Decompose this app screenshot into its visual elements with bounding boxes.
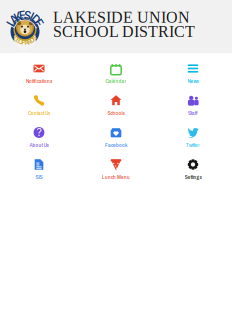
- staticText: I: [30, 10, 33, 24]
- staticText: E: [19, 9, 26, 22]
- staticText: L: [9, 16, 15, 30]
- staticText: Staff: [188, 109, 198, 117]
- button[interactable]: SIS: [0, 159, 77, 190]
- button[interactable]: Facebook: [77, 127, 154, 158]
- staticText: SCHOOL DISTRICT: [53, 23, 195, 40]
- button[interactable]: Contact Us: [0, 95, 77, 126]
- staticText: S: [32, 35, 36, 42]
- staticText: Calendar: [105, 77, 126, 85]
- button[interactable]: Twitter: [154, 127, 231, 158]
- staticText: A: [10, 13, 18, 26]
- staticText: Settings: [184, 173, 201, 181]
- staticText: E: [34, 15, 42, 31]
- button[interactable]: Calendar: [77, 63, 154, 94]
- staticText: ?: [36, 126, 41, 139]
- button[interactable]: Settings: [154, 159, 231, 190]
- button[interactable]: ?: [0, 127, 77, 158]
- staticText: D: [31, 13, 39, 26]
- staticText: E: [19, 8, 27, 24]
- staticText: L: [8, 15, 16, 31]
- staticText: LAKESIDE UNION: [53, 8, 190, 26]
- staticText: I: [30, 9, 34, 25]
- staticText: Schools: [107, 109, 124, 117]
- staticText: A: [9, 11, 19, 28]
- staticText: A: [24, 39, 28, 46]
- staticText: S: [24, 9, 31, 22]
- staticText: Twitter: [186, 141, 200, 149]
- staticText: K: [14, 9, 23, 25]
- staticText: Notifications: [26, 77, 52, 85]
- staticText: News: [187, 77, 198, 85]
- button[interactable]: News: [154, 63, 231, 94]
- staticText: About Us: [29, 141, 48, 149]
- staticText: O: [18, 38, 23, 45]
- button[interactable]: Lunch Menu: [77, 159, 154, 190]
- staticText: R: [27, 38, 31, 45]
- staticText: Lunch Menu: [102, 173, 130, 181]
- staticText: E: [35, 16, 42, 30]
- staticText: L: [14, 35, 17, 42]
- button[interactable]: Notifications: [0, 63, 77, 94]
- staticText: Contact Us: [28, 109, 50, 117]
- staticText: SIS: [35, 173, 42, 181]
- button[interactable]: Schools: [77, 95, 154, 126]
- staticText: P: [21, 39, 25, 46]
- staticText: D: [30, 37, 34, 44]
- staticText: D: [30, 11, 40, 28]
- staticText: Facebook: [105, 141, 127, 149]
- button[interactable]: Staff: [154, 95, 231, 126]
- staticText: K: [14, 10, 22, 24]
- staticText: E: [16, 37, 20, 44]
- staticText: S: [23, 8, 32, 24]
